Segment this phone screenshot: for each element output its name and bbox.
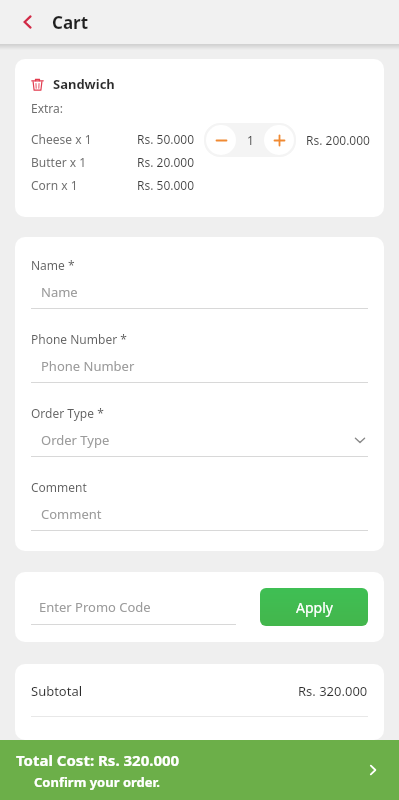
button[interactable]: Sandwich <box>31 75 115 93</box>
staticText: Rs. 320.000 <box>298 682 368 700</box>
staticText: Confirm your order. <box>34 773 160 791</box>
staticText: Subtotal <box>31 682 298 700</box>
staticText: Apply <box>296 598 333 617</box>
staticText: Enter Promo Code <box>39 598 151 616</box>
button[interactable]: Back <box>14 8 42 36</box>
staticText: Name * <box>31 257 75 273</box>
button[interactable]: Total Cost: Rs. 320.000 <box>0 740 399 800</box>
staticText: Phone Number * <box>31 331 127 347</box>
button[interactable]: Decrease quantity <box>206 125 236 155</box>
staticText: Cheese x 1 <box>31 131 92 147</box>
staticText: Rs. 20.000 <box>137 154 195 170</box>
staticText: Comment <box>41 505 368 523</box>
staticText: 1 <box>247 132 254 148</box>
other: Confirm order <box>361 758 385 782</box>
staticText: Rs. 50.000 <box>137 177 195 193</box>
staticText: Phone Number <box>41 357 368 375</box>
staticText: Total Cost: Rs. 320.000 <box>16 750 180 770</box>
staticText: Sandwich <box>53 75 115 93</box>
staticText: Corn x 1 <box>31 177 78 193</box>
staticText: Order Type <box>41 431 354 449</box>
button[interactable]: Increase quantity <box>264 125 294 155</box>
staticText: Cart <box>52 11 89 34</box>
staticText: Comment <box>31 479 87 495</box>
staticText: Rs. 200.000 <box>306 132 370 148</box>
staticText: Butter x 1 <box>31 154 87 170</box>
staticText: Order Type * <box>31 405 104 421</box>
staticText: Extra: <box>31 100 64 116</box>
staticText: Rs. 50.000 <box>137 131 195 147</box>
button[interactable]: Enter Promo Code <box>31 590 250 625</box>
button[interactable]: Apply <box>260 588 368 626</box>
staticText: Name <box>41 283 368 301</box>
